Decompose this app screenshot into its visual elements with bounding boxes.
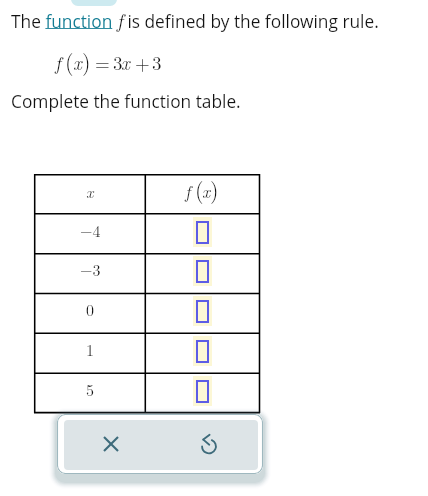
staticText: + — [135, 49, 150, 76]
staticText: The function f is defined by the followi… — [11, 5, 379, 33]
staticText: −3 — [80, 258, 101, 281]
button[interactable]: Undo — [193, 430, 225, 462]
staticText: ) — [210, 173, 219, 204]
staticText: x — [202, 178, 211, 203]
staticText: ( — [195, 173, 204, 204]
staticText: f — [185, 178, 191, 203]
staticText: 1 — [86, 338, 95, 361]
staticText: −4 — [80, 219, 101, 242]
staticText: ) — [82, 45, 91, 76]
staticText: x — [121, 49, 130, 76]
staticText: x — [86, 180, 94, 203]
staticText: 0 — [86, 298, 95, 321]
staticText: x — [73, 49, 82, 76]
staticText: ( — [65, 45, 74, 76]
staticText: f — [55, 49, 61, 76]
staticText: 3 — [113, 49, 123, 76]
staticText: Complete the function table. — [11, 90, 241, 114]
staticText: = — [95, 49, 110, 76]
staticText: 3 — [152, 49, 162, 76]
button[interactable]: Clear answer — [97, 430, 125, 458]
staticText: 5 — [86, 378, 95, 401]
